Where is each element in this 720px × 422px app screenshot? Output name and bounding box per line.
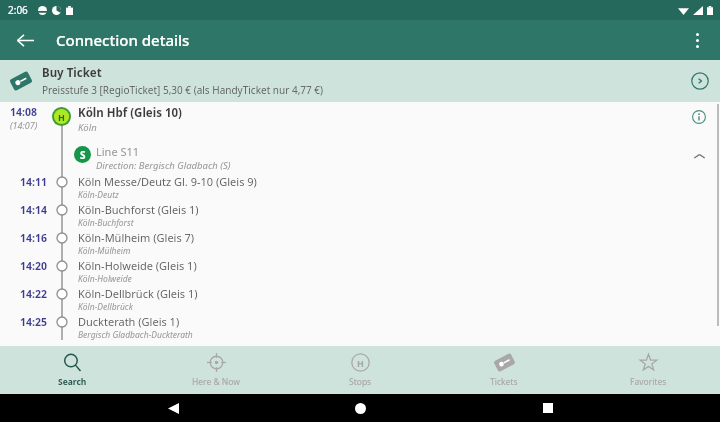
button[interactable]: Tickets bbox=[432, 346, 576, 394]
button[interactable]: 14:14 bbox=[0, 200, 720, 228]
button[interactable]: Recent apps bbox=[533, 394, 563, 422]
staticText: Köln-Holweide (Gleis 1) bbox=[78, 258, 197, 273]
button[interactable]: 14:25 bbox=[0, 312, 720, 340]
staticText: 14:11 bbox=[20, 175, 47, 189]
staticText: (14:07) bbox=[10, 119, 38, 131]
staticText: Preisstufe 3 [RegioTicket] 5,30 € (als H… bbox=[42, 83, 324, 97]
button[interactable]: 14:22 bbox=[0, 284, 720, 312]
button[interactable]: Info bbox=[688, 106, 710, 128]
staticText: 14:22 bbox=[20, 287, 47, 301]
staticText: H bbox=[58, 111, 65, 123]
staticText: H bbox=[357, 357, 364, 369]
staticText: Buy Ticket bbox=[42, 65, 102, 81]
button[interactable]: Favorites bbox=[576, 346, 720, 394]
staticText: Here & Now bbox=[192, 376, 240, 388]
staticText: Köln-Buchforst (Gleis 1) bbox=[78, 202, 199, 217]
staticText: Duckterath (Gleis 1) bbox=[78, 314, 180, 329]
staticText: Köln-Dellbrück bbox=[78, 301, 133, 312]
staticText: Search bbox=[58, 376, 87, 388]
button[interactable]: Search bbox=[0, 346, 144, 394]
button[interactable]: S bbox=[0, 140, 720, 172]
staticText: 14:25 bbox=[20, 315, 47, 329]
staticText: Köln-Buchforst bbox=[78, 217, 134, 228]
staticText: Stops bbox=[349, 376, 372, 388]
button[interactable]: Buy Ticket bbox=[0, 60, 720, 102]
staticText: Köln-Mülheim (Gleis 7) bbox=[78, 230, 195, 245]
staticText: Direction: Bergisch Gladbach (S) bbox=[96, 159, 231, 172]
staticText: Köln Messe/Deutz Gl. 9-10 (Gleis 9) bbox=[78, 174, 257, 189]
staticText: Bergisch Gladbach-Duckterath bbox=[78, 329, 193, 340]
button[interactable]: 14:16 bbox=[0, 228, 720, 256]
staticText: 14:08 bbox=[10, 105, 37, 119]
staticText: Tickets bbox=[490, 376, 518, 388]
staticText: Köln-Dellbrück (Gleis 1) bbox=[78, 286, 198, 301]
staticText: 14:20 bbox=[20, 259, 47, 273]
button[interactable]: Home bbox=[345, 394, 375, 422]
button[interactable]: Back bbox=[8, 23, 42, 57]
staticText: 14:14 bbox=[20, 203, 47, 217]
button[interactable]: 14:20 bbox=[0, 256, 720, 284]
button[interactable]: 14:08 bbox=[0, 102, 720, 140]
staticText: Köln-Deutz bbox=[78, 189, 119, 200]
button[interactable]: Back bbox=[158, 394, 188, 422]
staticText: Connection details bbox=[56, 30, 190, 50]
staticText: Köln Hbf (Gleis 10) bbox=[78, 105, 182, 121]
button[interactable]: 14:11 bbox=[0, 172, 720, 200]
staticText: Köln-Holweide bbox=[78, 273, 132, 284]
staticText: Köln bbox=[78, 121, 97, 134]
button[interactable]: H bbox=[288, 346, 432, 394]
staticText: Line S11 bbox=[96, 144, 140, 159]
staticText: S bbox=[80, 148, 86, 162]
staticText: 14:16 bbox=[20, 231, 47, 245]
staticText: Köln-Mülheim bbox=[78, 245, 131, 256]
button[interactable]: Here & Now bbox=[144, 346, 288, 394]
staticText: Favorites bbox=[630, 376, 667, 388]
button[interactable]: More options bbox=[681, 24, 713, 56]
button[interactable]: Collapse bbox=[688, 145, 710, 167]
staticText: 2:06 bbox=[8, 3, 28, 17]
